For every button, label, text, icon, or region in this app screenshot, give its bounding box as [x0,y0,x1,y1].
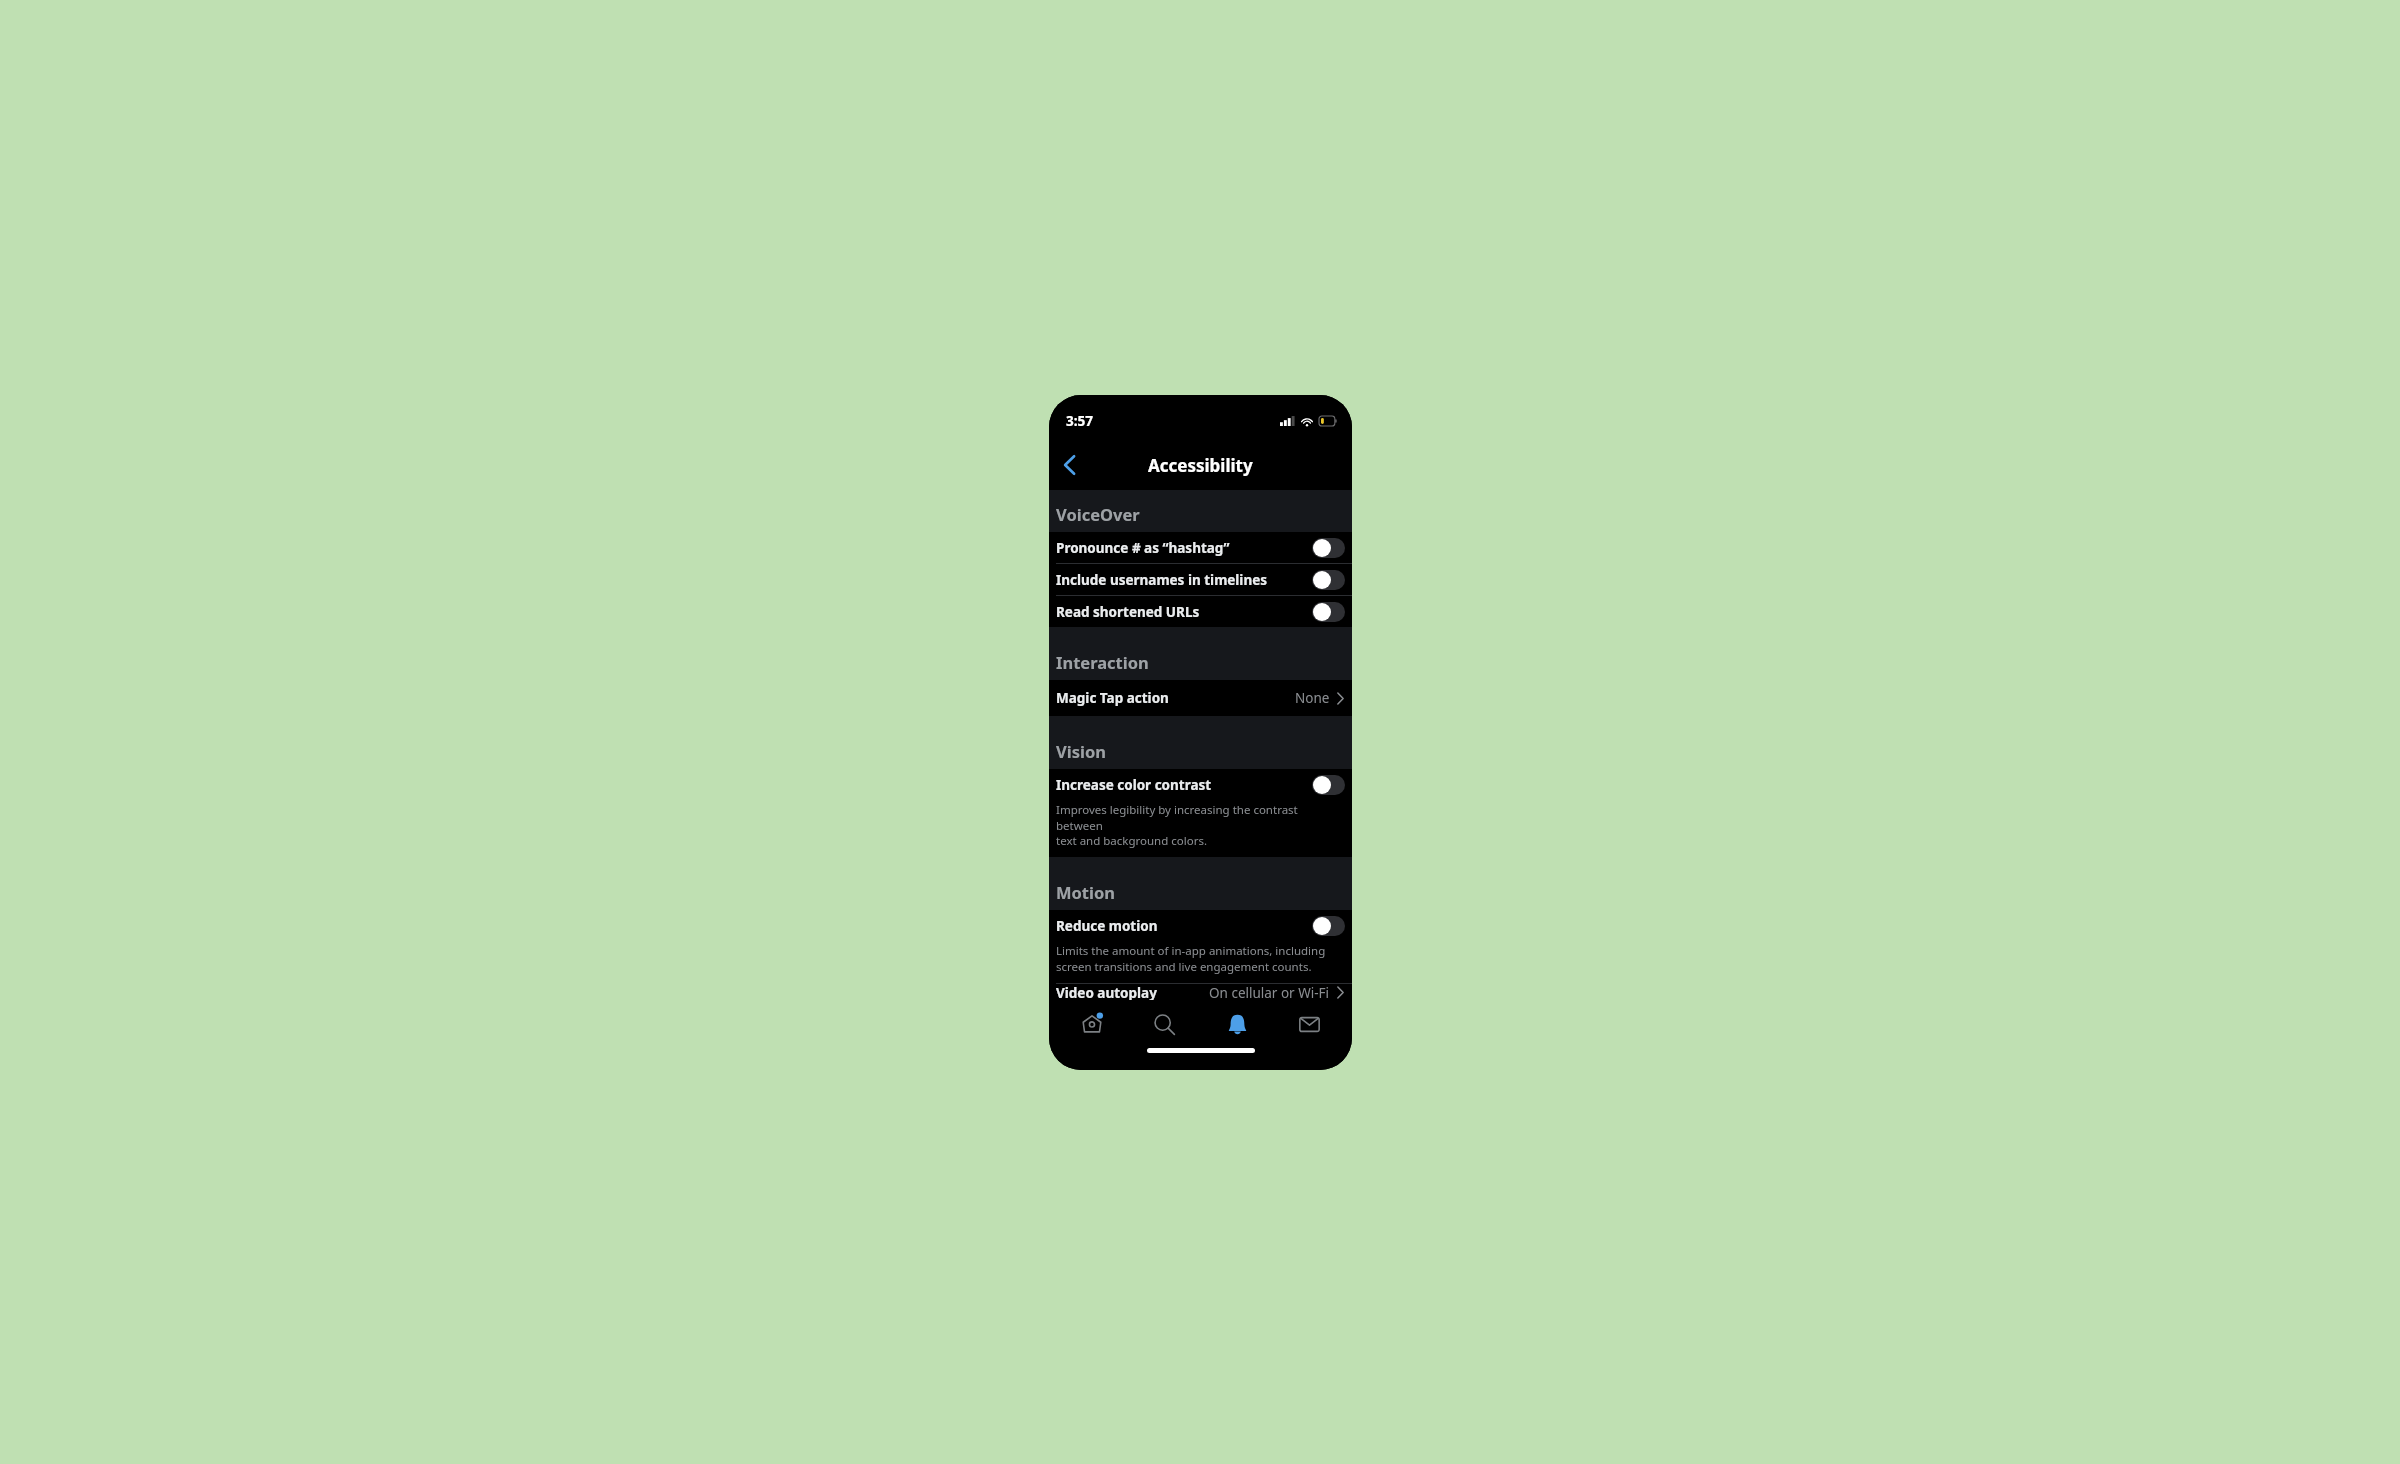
button[interactable]: Include usernames in timelines [1049,563,1352,595]
button[interactable]: Toggle [1312,775,1345,795]
button[interactable]: Toggle [1312,602,1345,622]
button[interactable]: Video autoplay [1049,984,1352,1000]
button[interactable]: Home [1062,1000,1122,1048]
staticText: Accessibility [1148,454,1253,477]
button[interactable]: Pronounce # as “hashtag” [1049,532,1352,563]
button[interactable]: Read shortened URLs [1049,595,1352,627]
staticText: Include usernames in timelines [1056,571,1312,589]
staticText: Magic Tap action [1056,689,1295,707]
button[interactable]: Reduce motion [1049,910,1352,983]
button[interactable]: Increase color contrast [1049,769,1352,857]
staticText: Improves legibility by increasing the co… [1056,802,1342,848]
button[interactable]: Magic Tap action [1049,680,1352,716]
staticText: Video autoplay [1056,984,1209,1000]
button[interactable]: Toggle [1312,570,1345,590]
button[interactable]: Notifications [1207,1000,1267,1048]
staticText: Read shortened URLs [1056,603,1312,621]
button[interactable]: Back [1049,445,1089,485]
staticText: Limits the amount of in-app animations, … [1056,943,1326,974]
staticText: Increase color contrast [1056,776,1312,794]
staticText: 3:57 [1066,412,1093,430]
button[interactable]: Toggle [1312,916,1345,936]
staticText: Vision [1056,740,1106,762]
staticText: Reduce motion [1056,917,1312,935]
staticText: Motion [1056,881,1116,903]
button[interactable]: Toggle [1312,538,1345,558]
button[interactable]: Search [1134,1000,1194,1048]
button[interactable]: Messages [1279,1000,1339,1048]
staticText: On cellular or Wi-Fi [1209,984,1330,1000]
staticText: None [1295,689,1330,707]
staticText: Interaction [1056,651,1149,673]
staticText: VoiceOver [1056,503,1140,525]
staticText: Pronounce # as “hashtag” [1056,539,1312,557]
